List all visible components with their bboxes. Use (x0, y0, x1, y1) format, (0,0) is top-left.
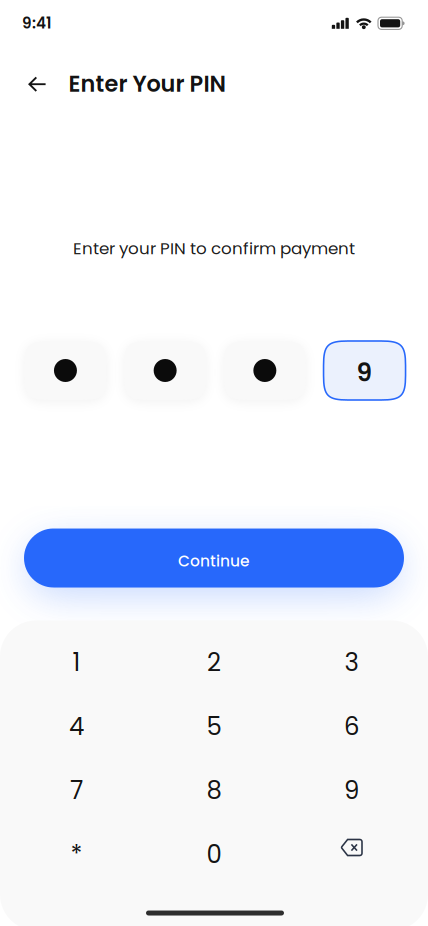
staticText: 7 (70, 773, 83, 808)
staticText: Enter your PIN to confirm payment (73, 237, 355, 260)
staticText: 9:41 (22, 13, 52, 34)
staticText: 8 (206, 773, 221, 808)
staticText: 6 (344, 709, 359, 744)
staticText: 1 (72, 645, 80, 680)
staticText: 3 (344, 645, 358, 680)
button[interactable]: 2 (145, 623, 283, 687)
staticText: 9 (344, 773, 359, 808)
button[interactable]: 8 (145, 751, 283, 815)
staticText: 5 (206, 709, 221, 744)
staticText: 9 (357, 355, 373, 390)
staticText: Continue (178, 550, 250, 572)
button[interactable]: Continue (24, 528, 404, 587)
staticText: 2 (207, 645, 221, 680)
staticText: Enter Your PIN (68, 68, 225, 100)
staticText: 0 (206, 837, 221, 872)
button[interactable]: 5 (145, 687, 283, 751)
button[interactable]: 9 (283, 751, 420, 815)
staticText: * (70, 837, 82, 872)
button[interactable]: 3 (283, 623, 420, 687)
button[interactable]: Back (15, 62, 59, 106)
button[interactable]: Delete (283, 815, 420, 879)
button[interactable]: 6 (283, 687, 420, 751)
staticText: 4 (69, 709, 84, 744)
button[interactable]: 0 (145, 815, 283, 879)
button[interactable]: * (8, 815, 145, 879)
button[interactable]: 4 (8, 687, 145, 751)
button[interactable]: 7 (8, 751, 145, 815)
button[interactable]: 1 (8, 623, 145, 687)
